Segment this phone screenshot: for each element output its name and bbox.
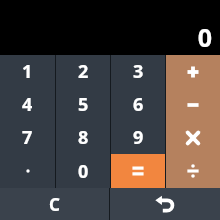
staticText: 7 — [22, 125, 33, 150]
staticText: 0 — [197, 20, 212, 54]
button[interactable]: 7 — [0, 121, 55, 154]
button[interactable]: Decimal point — [0, 154, 55, 188]
button[interactable]: 3 — [111, 55, 165, 88]
staticText: 5 — [78, 92, 89, 117]
button[interactable]: 9 — [111, 121, 165, 154]
staticText: 0 — [78, 159, 89, 184]
button[interactable]: Plus — [166, 55, 220, 88]
button[interactable]: Equals — [111, 154, 165, 188]
staticText: 8 — [78, 125, 89, 150]
button[interactable]: 1 — [0, 55, 55, 88]
button[interactable]: 8 — [56, 121, 110, 154]
staticText: 2 — [78, 59, 89, 84]
button[interactable]: 6 — [111, 88, 165, 121]
button[interactable]: 4 — [0, 88, 55, 121]
button[interactable]: Multiply — [166, 121, 220, 154]
button[interactable]: 5 — [56, 88, 110, 121]
staticText: 9 — [133, 125, 144, 150]
button[interactable]: Divide — [166, 154, 220, 188]
staticText: 1 — [22, 59, 33, 84]
button[interactable]: Backspace — [110, 188, 220, 220]
button[interactable]: 2 — [56, 55, 110, 88]
button[interactable]: 0 — [56, 154, 110, 188]
staticText: 3 — [133, 59, 144, 84]
button[interactable]: C — [0, 188, 109, 220]
staticText: 6 — [133, 92, 144, 117]
staticText: C — [49, 193, 60, 216]
button[interactable]: Minus — [166, 88, 220, 121]
staticText: 4 — [22, 92, 33, 117]
